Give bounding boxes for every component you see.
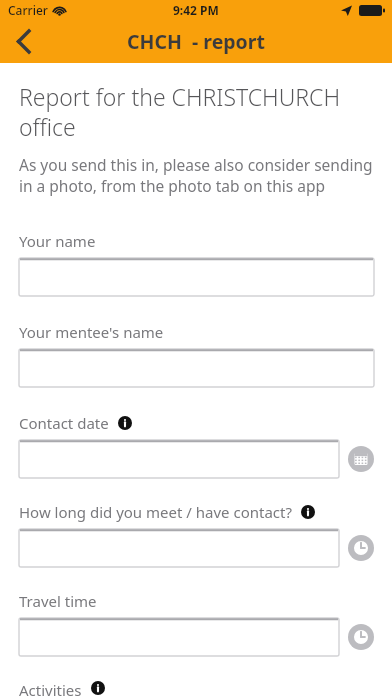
- button[interactable]: [19, 258, 374, 296]
- button[interactable]: More info: [301, 505, 315, 519]
- button[interactable]: More info: [118, 416, 132, 430]
- staticText: Your name: [19, 231, 96, 251]
- button[interactable]: [19, 529, 339, 567]
- staticText: Your mentee's name: [19, 322, 164, 342]
- button[interactable]: [19, 440, 339, 478]
- button[interactable]: Back: [0, 20, 46, 63]
- staticText: Carrier: [8, 2, 48, 18]
- staticText: Travel time: [19, 591, 97, 611]
- staticText: How long did you meet / have contact?: [19, 502, 292, 522]
- staticText: CHCH - report: [127, 28, 265, 55]
- button[interactable]: Pick time: [348, 535, 374, 561]
- button[interactable]: Pick date: [348, 446, 374, 472]
- staticText: Activities: [19, 680, 82, 696]
- staticText: Contact date: [19, 413, 109, 433]
- button[interactable]: Pick time: [348, 624, 374, 650]
- button[interactable]: [19, 618, 339, 656]
- staticText: As you send this in, please also conside…: [19, 154, 374, 197]
- staticText: Report for the CHRISTCHURCH office: [19, 81, 374, 143]
- staticText: 9:42 PM: [173, 2, 219, 18]
- button[interactable]: [19, 349, 374, 387]
- button[interactable]: More info: [91, 681, 105, 695]
